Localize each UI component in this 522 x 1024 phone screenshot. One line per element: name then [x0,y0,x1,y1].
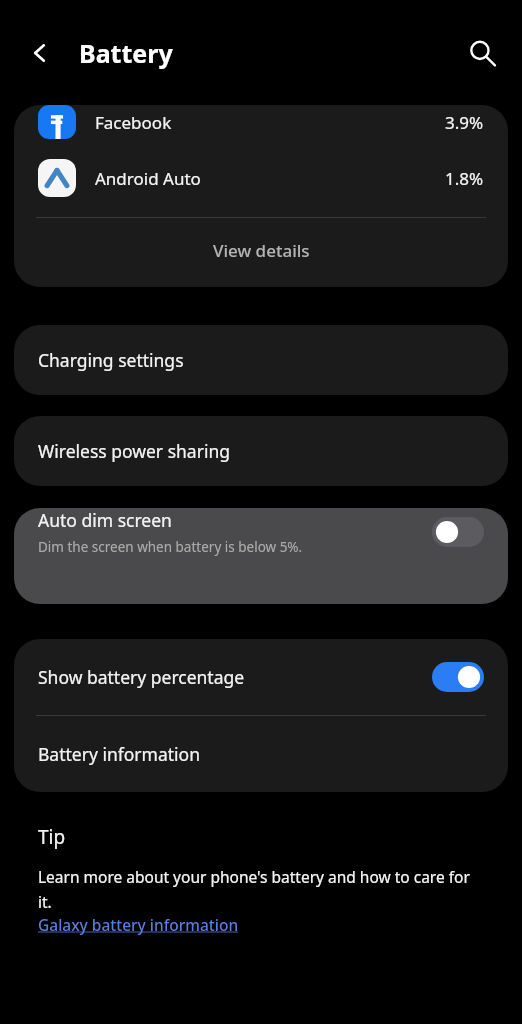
staticText: Learn more about your phone's battery an… [38,866,484,912]
button[interactable]: Battery information [14,716,508,792]
staticText: Battery information [38,742,200,766]
staticText: 3.9% [445,111,484,134]
staticText: Tip [38,824,66,850]
staticText: Auto dim screen [38,508,172,532]
staticText: View details [213,239,310,262]
staticText: Dim the screen when battery is below 5%. [38,538,303,556]
button[interactable]: Galaxy battery information [38,914,239,935]
button[interactable]: View details [14,218,508,283]
staticText: Facebook [95,111,172,134]
staticText: Wireless power sharing [38,439,230,463]
button[interactable]: Off [432,517,484,547]
button[interactable]: Show battery percentage [14,639,508,715]
button[interactable]: Auto dim screen [14,508,508,604]
button[interactable]: Search [456,27,508,79]
staticText: Battery [79,36,173,70]
button[interactable]: Back [14,27,66,79]
staticText: Show battery percentage [38,665,432,689]
button[interactable]: Charging settings [14,325,508,395]
staticText: Charging settings [38,348,184,372]
button[interactable]: Wireless power sharing [14,416,508,486]
button[interactable]: Facebook [14,105,508,139]
staticText: 1.8% [445,167,484,190]
staticText: Android Auto [95,167,201,190]
button[interactable]: Android Auto [14,139,508,217]
button[interactable]: On [432,662,484,692]
staticText: Galaxy battery information [38,914,239,935]
